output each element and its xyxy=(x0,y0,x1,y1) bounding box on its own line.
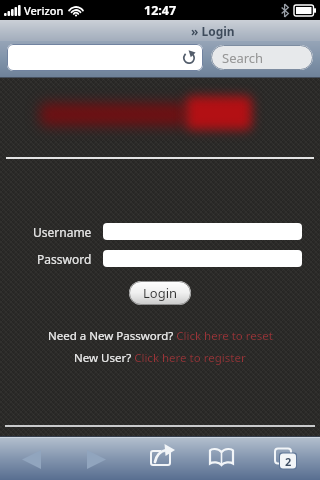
button[interactable]: Login xyxy=(129,281,191,305)
staticText: » Login xyxy=(191,23,235,39)
staticText: 2 xyxy=(285,454,292,469)
button[interactable] xyxy=(7,44,203,71)
button[interactable]: New User? Click here to register xyxy=(74,350,246,366)
button[interactable] xyxy=(0,436,64,480)
button[interactable] xyxy=(128,436,192,480)
staticText: Search xyxy=(222,49,264,67)
button[interactable]: Search xyxy=(211,45,313,70)
button[interactable] xyxy=(64,436,128,480)
button[interactable] xyxy=(103,223,302,240)
staticText: Login xyxy=(143,284,178,302)
staticText: Username xyxy=(33,224,92,240)
staticText: 12:47 xyxy=(144,2,177,19)
button[interactable] xyxy=(192,436,256,480)
staticText: Verizon xyxy=(24,3,64,18)
button[interactable] xyxy=(103,250,302,267)
staticText: Password xyxy=(37,251,92,267)
button[interactable]: Need a New Password? Click here to reset xyxy=(48,328,273,344)
button[interactable] xyxy=(256,436,320,480)
